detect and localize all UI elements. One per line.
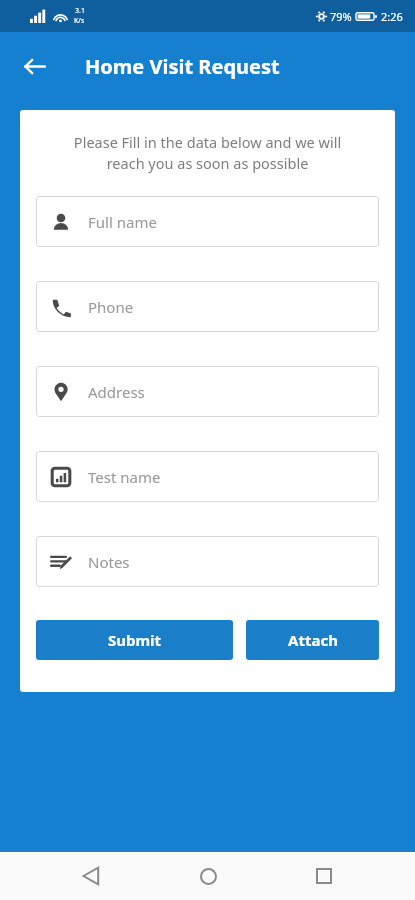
button[interactable]: Full name [36, 196, 379, 247]
staticText: Submit [108, 630, 162, 650]
staticText: Test name [88, 467, 161, 487]
button[interactable]: Submit [36, 620, 233, 660]
staticText: Address [88, 382, 145, 402]
staticText: 2:26 [381, 9, 403, 24]
staticText: Phone [88, 297, 134, 317]
button[interactable]: Recent apps [298, 852, 350, 900]
staticText: Home Visit Request [85, 53, 280, 80]
button[interactable]: Address [36, 366, 379, 417]
staticText: Notes [88, 552, 130, 572]
staticText: 79% [330, 9, 352, 24]
staticText: Full name [88, 212, 157, 232]
button[interactable]: Attach [246, 620, 379, 660]
staticText: K/s [74, 16, 85, 26]
button[interactable]: Test name [36, 451, 379, 502]
button[interactable]: Back [65, 852, 117, 900]
button[interactable]: Phone [36, 281, 379, 332]
staticText: Attach [288, 630, 338, 650]
button[interactable]: Notes [36, 536, 379, 587]
staticText: Please Fill in the data below and we wil… [38, 132, 377, 174]
button[interactable]: Home [182, 852, 234, 900]
button[interactable]: Back [14, 46, 54, 86]
staticText: 3.1 [75, 6, 85, 16]
